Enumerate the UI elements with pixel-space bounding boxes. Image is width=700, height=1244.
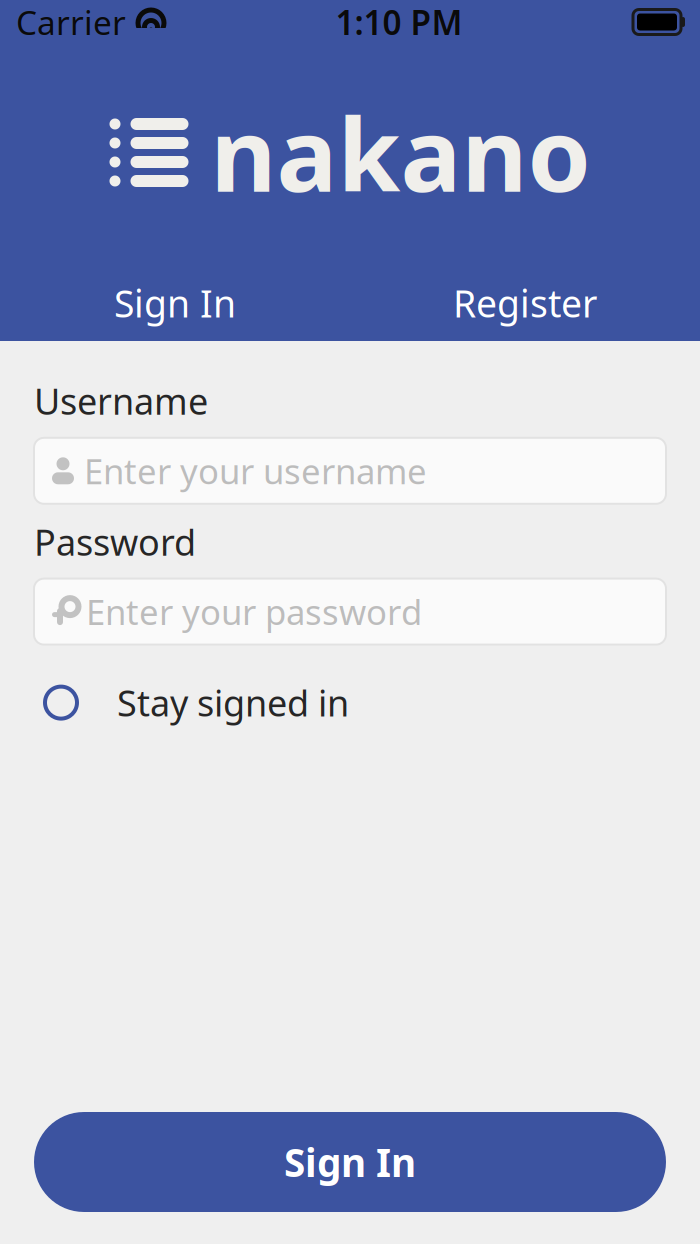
staticText: Stay signed in xyxy=(117,679,349,726)
staticText: Enter your username xyxy=(84,448,427,494)
staticText: Carrier xyxy=(16,0,126,44)
staticText: Register xyxy=(453,278,597,328)
staticText: nakano xyxy=(210,85,590,220)
staticText: Password xyxy=(34,518,196,566)
button[interactable]: Sign In xyxy=(34,1112,666,1212)
staticText: Username xyxy=(34,377,208,425)
button[interactable]: Stay signed in xyxy=(34,675,666,731)
button[interactable]: Register xyxy=(350,273,700,333)
staticText: Sign In xyxy=(114,278,236,328)
staticText: Sign In xyxy=(284,1136,416,1188)
staticText: Enter your password xyxy=(86,589,422,635)
staticText: 1:10 PM xyxy=(335,0,462,44)
button[interactable]: Sign In xyxy=(0,273,350,333)
